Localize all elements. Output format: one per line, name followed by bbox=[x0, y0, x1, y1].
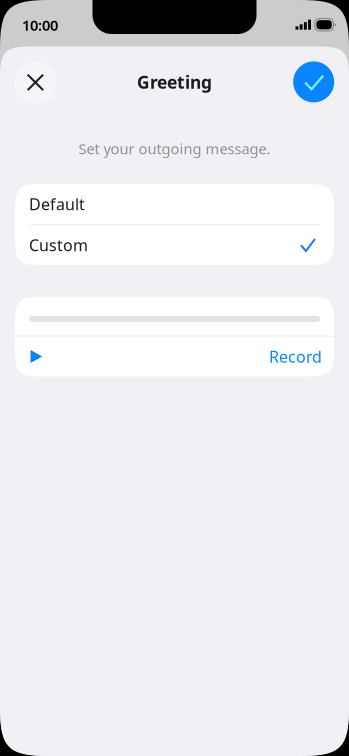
button[interactable]: Record bbox=[269, 336, 334, 376]
button[interactable]: Custom bbox=[15, 225, 334, 265]
button[interactable]: Done bbox=[293, 61, 334, 102]
staticText: Default bbox=[29, 193, 85, 215]
button[interactable]: Close bbox=[15, 62, 55, 102]
staticText: 10:00 bbox=[22, 15, 58, 35]
button[interactable]: Play bbox=[15, 336, 54, 376]
staticText: Greeting bbox=[137, 70, 212, 93]
staticText: Record bbox=[269, 346, 322, 367]
button[interactable]: Default bbox=[15, 184, 334, 224]
staticText: Set your outgoing message. bbox=[78, 139, 270, 158]
staticText: Custom bbox=[29, 234, 88, 256]
